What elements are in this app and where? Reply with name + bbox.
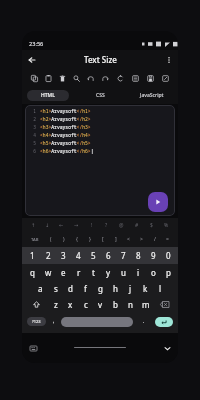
staticText: 6	[25, 148, 36, 154]
button[interactable]: Backspace	[153, 296, 176, 312]
button[interactable]: CSS	[79, 90, 121, 101]
staticText: .	[143, 318, 145, 325]
button[interactable]: a	[33, 280, 48, 296]
staticText: 3	[25, 124, 36, 130]
button[interactable]: 8	[131, 247, 146, 264]
button[interactable]: #	[129, 218, 144, 232]
button[interactable]: →	[69, 218, 84, 232]
button[interactable]: Redo	[98, 69, 113, 87]
button[interactable]: Run	[148, 192, 168, 212]
staticText: <h2>Arvaysoft</h2>	[40, 116, 91, 122]
button[interactable]: Back	[24, 52, 39, 67]
button[interactable]: Refresh	[113, 69, 128, 87]
button[interactable]: f	[78, 280, 93, 296]
button[interactable]: <	[122, 232, 135, 247]
staticText: /	[154, 236, 156, 243]
button[interactable]: m	[138, 296, 153, 312]
staticText: →	[74, 222, 79, 228]
button[interactable]: 0	[161, 247, 176, 264]
staticText: 4	[76, 250, 81, 261]
button[interactable]: ]	[109, 232, 122, 247]
button[interactable]: Save	[143, 69, 158, 87]
button[interactable]: o	[146, 264, 161, 280]
button[interactable]: {	[70, 232, 83, 247]
button[interactable]: Space	[61, 317, 133, 327]
button[interactable]: 5	[86, 247, 101, 264]
button[interactable]: TAB	[26, 232, 44, 247]
button[interactable]: Search	[69, 69, 83, 87]
button[interactable]: %	[159, 218, 174, 232]
button[interactable]: HTML	[27, 90, 69, 101]
button[interactable]: Enter	[155, 317, 173, 327]
button[interactable]: ↓	[40, 218, 54, 232]
button[interactable]: q	[24, 264, 40, 280]
button[interactable]: u	[116, 264, 131, 280]
button[interactable]: 2	[40, 247, 56, 264]
button[interactable]: Hide keyboard	[161, 342, 173, 354]
button[interactable]: c	[78, 296, 93, 312]
button[interactable]: /	[148, 232, 161, 247]
button[interactable]: Paste	[41, 69, 55, 87]
button[interactable]: )	[57, 232, 70, 247]
button[interactable]: w	[40, 264, 56, 280]
button[interactable]: ←	[54, 218, 69, 232]
button[interactable]: v	[93, 296, 108, 312]
button[interactable]: d	[63, 280, 78, 296]
button[interactable]: $	[144, 218, 159, 232]
button[interactable]: Copy	[27, 69, 41, 87]
button[interactable]: More options	[162, 53, 176, 67]
button[interactable]: =	[161, 232, 174, 247]
button[interactable]: Edit	[158, 69, 173, 87]
button[interactable]: 6	[101, 247, 116, 264]
staticText: $	[150, 222, 153, 229]
button[interactable]: 7	[116, 247, 131, 264]
button[interactable]: ,	[46, 312, 61, 331]
button[interactable]: (	[44, 232, 57, 247]
staticText: 6	[106, 250, 111, 261]
button[interactable]: k	[138, 280, 153, 296]
button[interactable]: ?123	[27, 317, 46, 326]
button[interactable]: .	[133, 312, 155, 331]
button[interactable]: b	[108, 296, 123, 312]
button[interactable]: Shift	[24, 296, 48, 312]
button[interactable]: r	[71, 264, 86, 280]
button[interactable]: z	[48, 296, 63, 312]
button[interactable]: e	[56, 264, 71, 280]
button[interactable]: n	[123, 296, 138, 312]
button[interactable]: 9	[146, 247, 161, 264]
button[interactable]: t	[86, 264, 101, 280]
button[interactable]: Format	[128, 69, 143, 87]
staticText: }	[89, 236, 91, 243]
staticText: k	[143, 283, 148, 294]
staticText: 5	[91, 250, 96, 261]
button[interactable]: p	[161, 264, 176, 280]
button[interactable]: s	[48, 280, 63, 296]
button[interactable]: 1	[24, 247, 40, 264]
button[interactable]: y	[101, 264, 116, 280]
button[interactable]: h	[108, 280, 123, 296]
staticText: <h1>Arvaysoft</h1>	[40, 108, 91, 114]
button[interactable]: [	[96, 232, 109, 247]
button[interactable]: l	[153, 280, 168, 296]
button[interactable]: 3	[56, 247, 71, 264]
button[interactable]: j	[123, 280, 138, 296]
button[interactable]: Switch keyboard	[27, 342, 39, 354]
button[interactable]: Undo	[83, 69, 98, 87]
button[interactable]: >	[135, 232, 148, 247]
button[interactable]: }	[83, 232, 96, 247]
button[interactable]: ?	[99, 218, 114, 232]
button[interactable]: i	[131, 264, 146, 280]
staticText: Text Size	[84, 54, 117, 65]
button[interactable]: Delete	[55, 69, 69, 87]
staticText: <h5>Arvaysoft</h5>	[40, 140, 91, 146]
staticText: !	[91, 222, 93, 229]
button[interactable]: 4	[71, 247, 86, 264]
button[interactable]: g	[93, 280, 108, 296]
button[interactable]: JavaScript	[131, 90, 173, 101]
staticText: o	[151, 267, 156, 278]
button[interactable]: !	[84, 218, 99, 232]
staticText: HTML	[41, 92, 55, 99]
button[interactable]: ↑	[26, 218, 40, 232]
button[interactable]: x	[63, 296, 78, 312]
button[interactable]: @	[114, 218, 129, 232]
